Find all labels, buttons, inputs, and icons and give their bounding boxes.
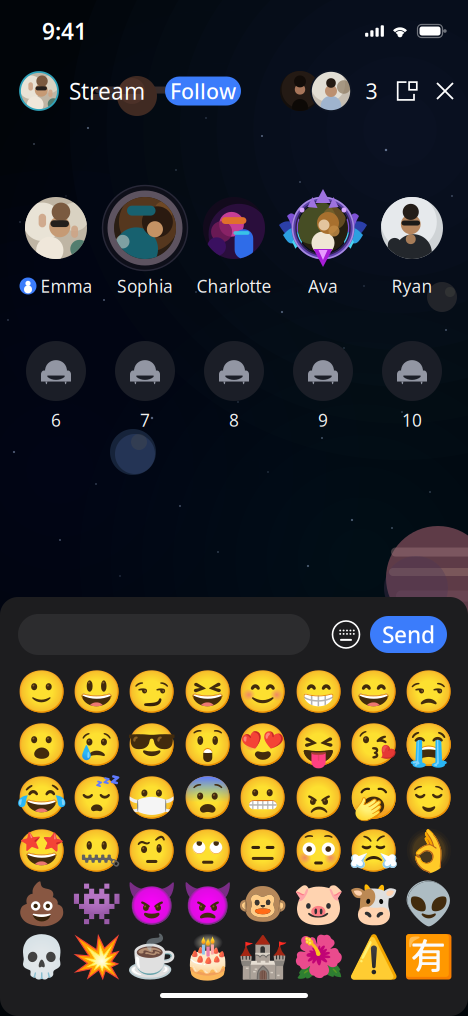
staticText: 🙂: [16, 668, 67, 715]
staticText: Ava: [308, 274, 338, 297]
staticText: 💩: [16, 880, 67, 927]
staticText: 🤐: [71, 827, 122, 874]
staticText: 😌: [403, 774, 454, 821]
staticText: Ryan: [391, 274, 432, 297]
staticText: 😠: [293, 774, 344, 821]
button[interactable]: 💥: [69, 930, 124, 983]
button[interactable]: 🤐: [69, 824, 124, 877]
staticText: 🏰: [237, 933, 288, 980]
staticText: 😊: [237, 668, 288, 715]
staticText: Follow: [170, 77, 236, 105]
button[interactable]: 👾: [69, 877, 124, 930]
staticText: Sophia: [117, 274, 173, 297]
button[interactable]: 😏: [124, 665, 180, 718]
staticText: 👽: [403, 880, 454, 927]
button[interactable]: Follow: [165, 76, 241, 105]
button[interactable]: 😈: [124, 877, 180, 930]
button[interactable]: Close: [436, 82, 454, 100]
staticText: 😒: [403, 668, 454, 715]
staticText: 9:41: [42, 16, 87, 46]
staticText: ☕: [126, 933, 177, 980]
button[interactable]: 🐮: [346, 877, 401, 930]
button[interactable]: Sophia: [100, 185, 189, 295]
staticText: 🥱: [348, 774, 399, 821]
button[interactable]: 🤨: [124, 824, 180, 877]
staticText: ⚠️: [348, 933, 399, 980]
button[interactable]: 🏰: [235, 930, 290, 983]
button[interactable]: 😳: [290, 824, 346, 877]
button[interactable]: 👿: [180, 877, 235, 930]
button[interactable]: 💀: [13, 930, 69, 983]
staticText: 😘: [348, 721, 399, 768]
button[interactable]: Empty seat 8: [189, 341, 278, 429]
button[interactable]: 😮: [13, 718, 69, 771]
button[interactable]: 🌺: [290, 930, 346, 983]
button[interactable]: Empty seat 7: [100, 341, 189, 429]
button[interactable]: 🤩: [13, 824, 69, 877]
button[interactable]: 😴: [69, 771, 124, 824]
staticText: 😲: [182, 721, 233, 768]
staticText: 😏: [126, 668, 177, 715]
button[interactable]: 😃: [69, 665, 124, 718]
button[interactable]: 😌: [401, 771, 457, 824]
staticText: Send: [382, 619, 435, 649]
button[interactable]: 😝: [290, 718, 346, 771]
staticText: 🐵: [237, 880, 288, 927]
button[interactable]: Empty seat 9: [278, 341, 367, 429]
button[interactable]: Send: [370, 616, 447, 653]
button[interactable]: 😊: [235, 665, 290, 718]
staticText: 😃: [71, 668, 122, 715]
button[interactable]: 🐷: [290, 877, 346, 930]
staticText: 😈: [126, 880, 177, 927]
button[interactable]: 😭: [401, 718, 457, 771]
button[interactable]: 😬: [235, 771, 290, 824]
button[interactable]: Empty seat 10: [367, 341, 456, 429]
button[interactable]: 😘: [346, 718, 401, 771]
staticText: 🐮: [348, 880, 399, 927]
staticText: 😎: [126, 721, 177, 768]
staticText: 😑: [237, 827, 288, 874]
button[interactable]: 🙂: [13, 665, 69, 718]
staticText: 👿: [182, 880, 233, 927]
staticText: 😬: [237, 774, 288, 821]
button[interactable]: 🎂: [180, 930, 235, 983]
button[interactable]: 😆: [180, 665, 235, 718]
button[interactable]: 🥱: [346, 771, 401, 824]
button[interactable]: 🈶: [401, 930, 457, 983]
button[interactable]: 😂: [13, 771, 69, 824]
button[interactable]: ⚠️: [346, 930, 401, 983]
button[interactable]: 😁: [290, 665, 346, 718]
button[interactable]: Charlotte: [189, 185, 278, 295]
button[interactable]: 👽: [401, 877, 457, 930]
button[interactable]: 😢: [69, 718, 124, 771]
button[interactable]: Empty seat 6: [11, 341, 100, 429]
button[interactable]: Emma: [11, 185, 100, 295]
button[interactable]: 👌: [401, 824, 457, 877]
button[interactable]: 😒: [401, 665, 457, 718]
button[interactable]: 😄: [346, 665, 401, 718]
button[interactable]: 😍: [235, 718, 290, 771]
button[interactable]: 🙄: [180, 824, 235, 877]
button[interactable]: 😎: [124, 718, 180, 771]
button[interactable]: 😨: [180, 771, 235, 824]
button[interactable]: 😲: [180, 718, 235, 771]
button[interactable]: 3 viewers: [284, 71, 377, 111]
button[interactable]: Ava: [278, 185, 367, 295]
staticText: 9: [318, 408, 328, 431]
button[interactable]: Picture in Picture: [396, 81, 418, 101]
button[interactable]: 🐵: [235, 877, 290, 930]
button[interactable]: ☕: [124, 930, 180, 983]
button[interactable]: 😷: [124, 771, 180, 824]
button[interactable]: Ryan: [367, 185, 456, 295]
button[interactable]: 💩: [13, 877, 69, 930]
staticText: 😄: [348, 668, 399, 715]
staticText: 😮: [16, 721, 67, 768]
button[interactable]: Stream: [20, 72, 145, 110]
button[interactable]: 😤: [346, 824, 401, 877]
button[interactable]: 😑: [235, 824, 290, 877]
button[interactable]: Keyboard: [332, 620, 360, 648]
button[interactable]: 😠: [290, 771, 346, 824]
staticText: 💀: [16, 933, 67, 980]
staticText: 😁: [293, 668, 344, 715]
